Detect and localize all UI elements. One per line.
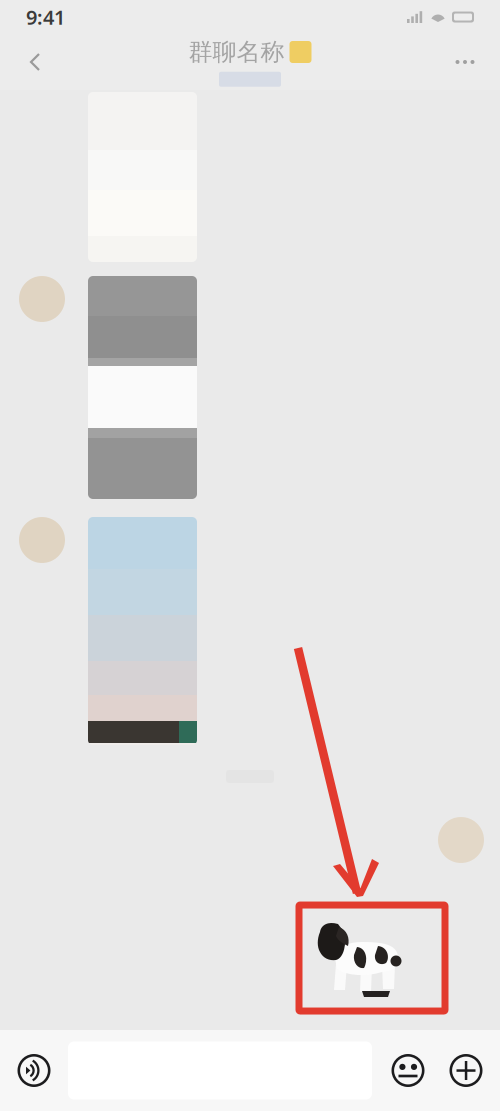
button[interactable]: More options [444,1048,488,1092]
button[interactable]: More [444,38,486,86]
staticText: 9:41 [26,4,65,30]
button[interactable]: Voice message [12,1048,56,1092]
button[interactable]: Back [14,38,56,86]
staticText: 群聊名称 [188,37,284,67]
button[interactable]: Dog sticker [299,905,445,1011]
button[interactable]: Emoji [386,1048,430,1092]
